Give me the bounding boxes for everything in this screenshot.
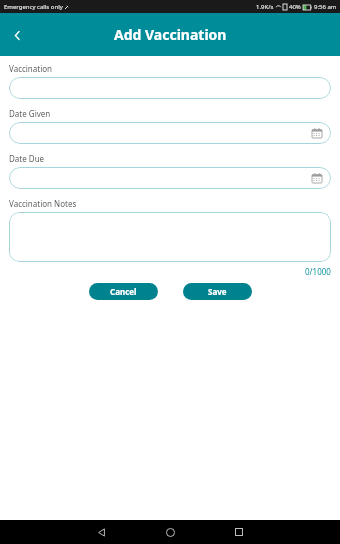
staticText: Cancel	[110, 286, 137, 297]
staticText: Emergency calls only	[4, 3, 63, 11]
staticText: Save	[208, 286, 227, 297]
staticText: 0/1000	[305, 266, 331, 277]
button[interactable]: Cancel	[89, 283, 158, 300]
staticText: Add Vaccination	[114, 25, 227, 44]
button[interactable]: Back	[90, 521, 112, 543]
button[interactable]	[9, 77, 331, 99]
button[interactable]	[9, 212, 331, 262]
staticText: 1.9K/s	[256, 3, 274, 11]
other: Pick date	[311, 172, 323, 184]
staticText: Vaccination	[9, 63, 53, 74]
other: Pick date	[311, 127, 323, 139]
button[interactable]: Save	[183, 283, 252, 300]
button[interactable]: Home	[159, 521, 181, 543]
staticText: 40%	[289, 3, 301, 11]
staticText: Vaccination Notes	[9, 198, 77, 209]
button[interactable]: Pick date	[9, 122, 331, 144]
button[interactable]: Pick date	[9, 167, 331, 189]
staticText: Date Given	[9, 108, 51, 119]
staticText: 9:56 am	[314, 3, 337, 11]
staticText: Date Due	[9, 153, 45, 164]
button[interactable]: Back	[0, 18, 34, 52]
button[interactable]: Recent apps	[228, 521, 250, 543]
